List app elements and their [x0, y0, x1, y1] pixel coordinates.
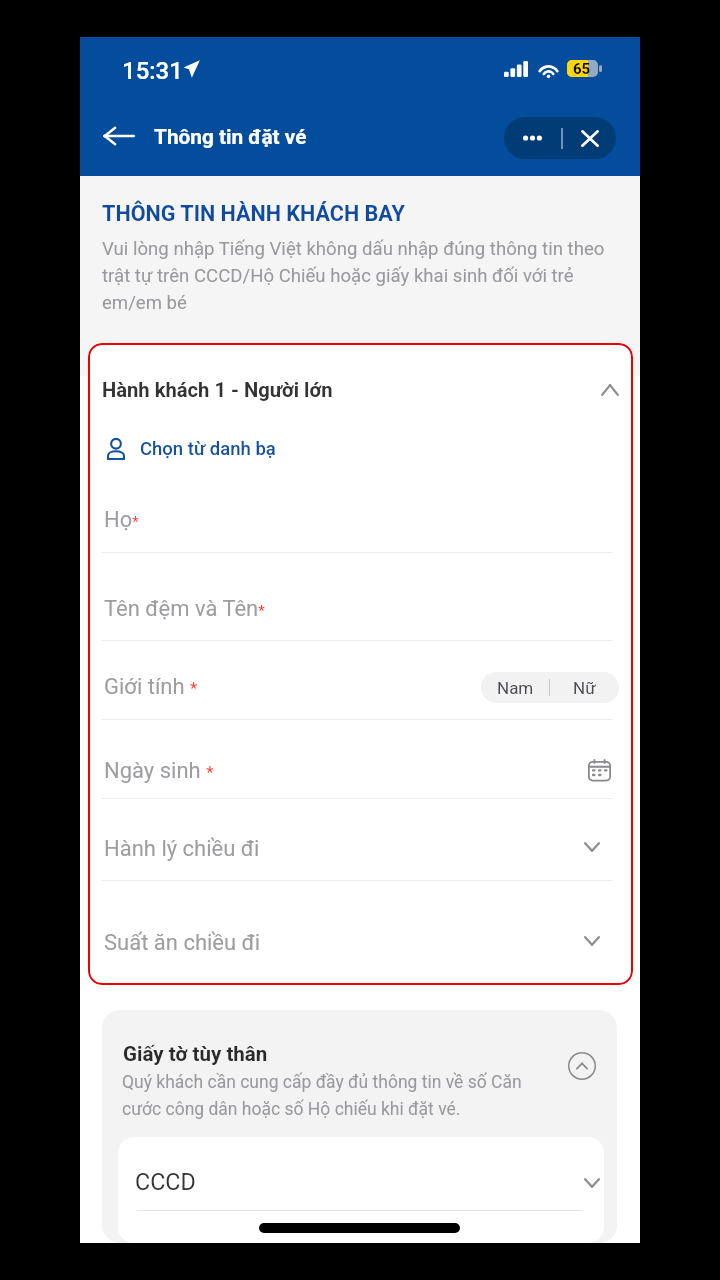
staticText: Ngày sinh * — [104, 758, 214, 784]
button[interactable]: More options — [504, 117, 561, 159]
button[interactable]: Back — [93, 117, 145, 155]
button[interactable]: Hành khách 1 - Người lớn — [102, 365, 619, 415]
staticText: THÔNG TIN HÀNH KHÁCH BAY — [102, 201, 405, 226]
other: Pick date — [588, 758, 611, 781]
staticText: Hành khách 1 - Người lớn — [102, 378, 333, 402]
staticText: Nữ — [573, 678, 596, 698]
button[interactable]: Tên đệm và Tên* — [88, 552, 633, 640]
staticText: Họ* — [104, 507, 139, 533]
button[interactable]: Giấy tờ tùy thân — [102, 1010, 617, 1243]
button[interactable]: Suất ăn chiều đi — [88, 880, 633, 985]
staticText: Hành lý chiều đi — [104, 836, 260, 862]
staticText: Quý khách cần cung cấp đầy đủ thông tin … — [122, 1072, 542, 1119]
staticText: Giấy tờ tùy thân — [123, 1042, 268, 1066]
button[interactable]: Nam — [481, 672, 549, 703]
button[interactable]: Nữ — [550, 672, 619, 703]
staticText: Vui lòng nhập Tiếng Việt không dấu nhập … — [102, 238, 612, 314]
other: Collapse — [568, 1052, 596, 1080]
staticText: Chọn từ danh bạ — [140, 438, 276, 460]
button[interactable]: Close — [563, 117, 616, 159]
staticText: 15:31 — [122, 57, 183, 85]
button[interactable]: Họ* — [88, 483, 633, 552]
staticText: Suất ăn chiều đi — [104, 930, 261, 956]
button[interactable]: Hành lý chiều đi — [88, 798, 633, 880]
staticText: 65 — [573, 60, 591, 77]
button[interactable]: CCCD — [118, 1137, 604, 1243]
button[interactable]: Giới tính * — [88, 640, 633, 719]
staticText: Thông tin đặt vé — [154, 125, 307, 149]
button[interactable]: Ngày sinh * — [88, 719, 633, 798]
staticText: Giới tính * — [104, 674, 198, 700]
staticText: Nam — [497, 678, 534, 698]
staticText: Tên đệm và Tên* — [104, 596, 265, 622]
button[interactable]: Chọn từ danh bạ — [102, 425, 292, 473]
staticText: CCCD — [135, 1168, 196, 1195]
